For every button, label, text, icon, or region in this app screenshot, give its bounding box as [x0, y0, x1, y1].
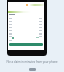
button[interactable]: [9, 43, 43, 46]
button[interactable]: [8, 40, 44, 41]
staticText: File a claim in minutes from your phone: [0, 60, 64, 64]
button[interactable]: More: [29, 68, 36, 71]
button[interactable]: [8, 29, 44, 32]
button[interactable]: [8, 34, 44, 35]
button[interactable]: [8, 26, 44, 29]
button[interactable]: [8, 23, 44, 26]
button[interactable]: [8, 32, 44, 35]
button[interactable]: [8, 17, 44, 20]
button[interactable]: [8, 35, 44, 38]
button[interactable]: [8, 20, 44, 23]
